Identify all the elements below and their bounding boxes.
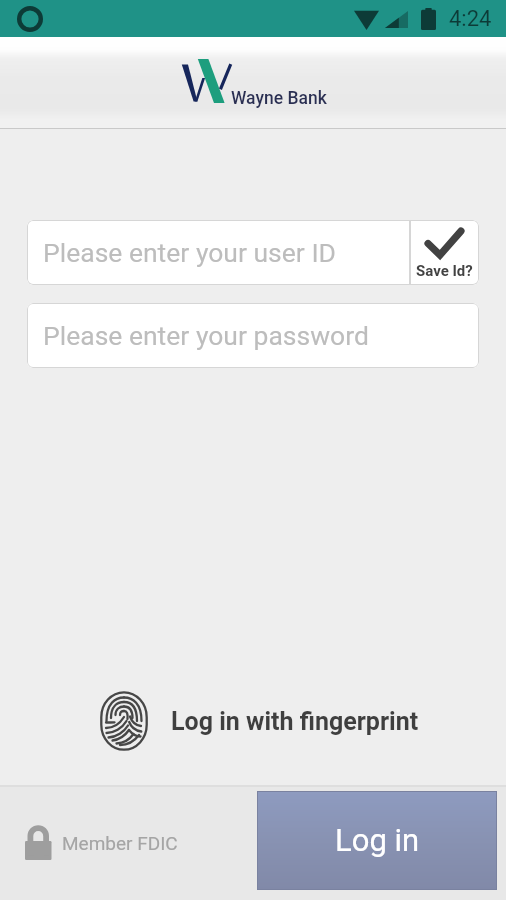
other: Status indicator [17, 6, 43, 32]
staticText: Log in [335, 822, 420, 858]
button[interactable]: Log in [257, 791, 497, 890]
button[interactable]: Member FDIC [25, 825, 178, 860]
staticText: Wayne Bank [231, 88, 327, 109]
staticText: Log in with fingerprint [171, 707, 419, 736]
button[interactable]: Log in with fingerprint [0, 691, 506, 751]
staticText: Save Id? [416, 262, 473, 280]
button[interactable]: Please enter your user ID [27, 220, 410, 285]
staticText: Please enter your password [43, 320, 369, 351]
button[interactable]: Please enter your password [27, 303, 479, 368]
staticText: Please enter your user ID [43, 237, 337, 268]
button[interactable]: Save Id? [410, 220, 479, 285]
staticText: 4:24 [449, 6, 492, 32]
staticText: Member FDIC [62, 832, 178, 854]
